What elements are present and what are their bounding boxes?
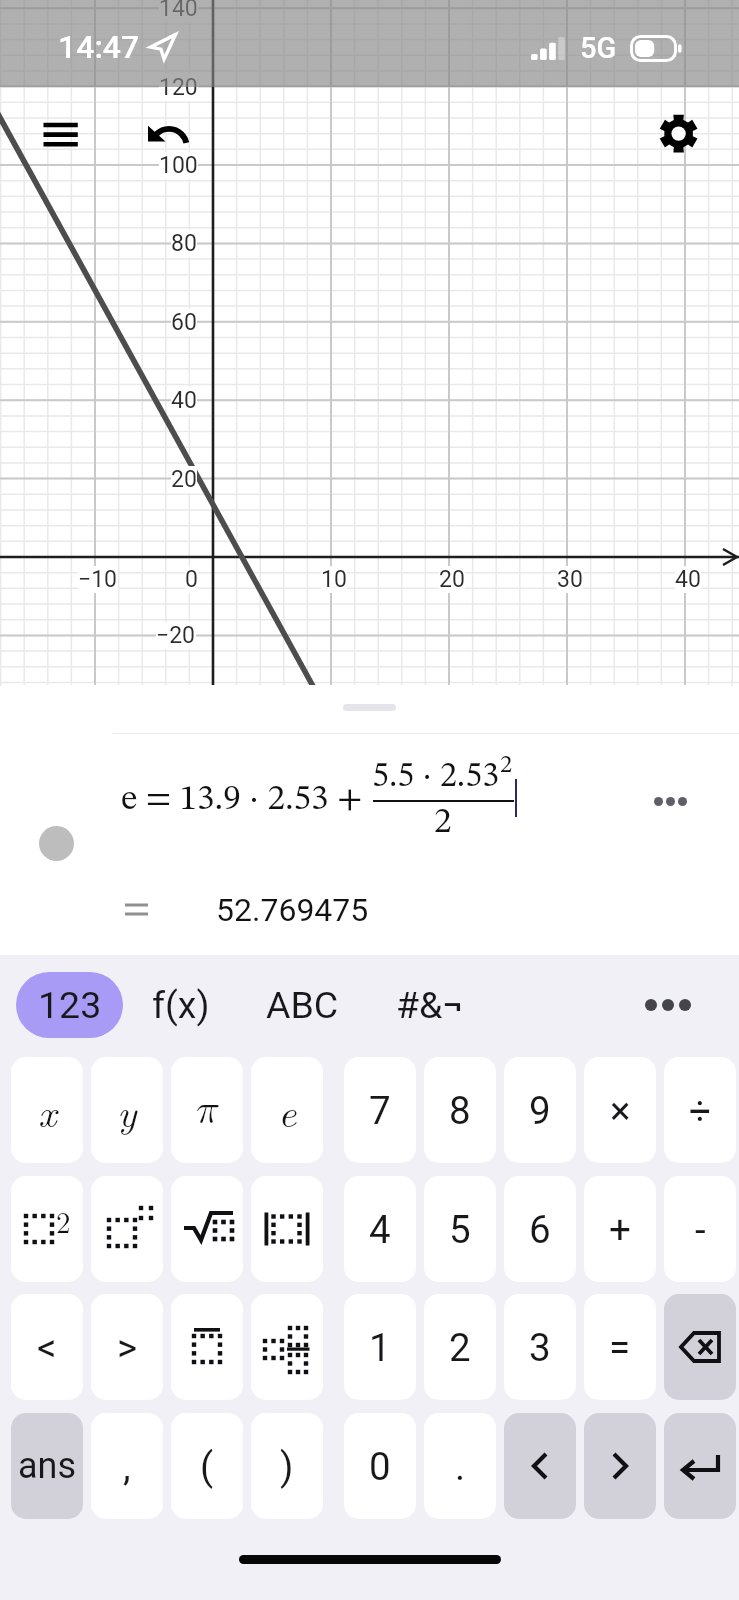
button[interactable]: y (91, 1057, 163, 1163)
button[interactable]: ( (171, 1413, 243, 1519)
staticText: 52.769475 (216, 891, 369, 929)
button[interactable]: - (664, 1176, 736, 1282)
staticText: #&¬ (396, 983, 464, 1027)
staticText: 120 (159, 74, 198, 101)
staticText: 2 (500, 753, 513, 778)
staticText: 8 (449, 1088, 471, 1133)
staticText: 0 (369, 1444, 391, 1489)
staticText: - (695, 1207, 706, 1252)
button[interactable]: e (251, 1057, 323, 1163)
button[interactable]: > (91, 1294, 163, 1400)
staticText: e (278, 1082, 297, 1139)
staticText: x (38, 1082, 57, 1139)
staticText: 9 (529, 1088, 551, 1133)
button[interactable]: < (11, 1294, 83, 1400)
button[interactable]: Enter (664, 1413, 736, 1519)
staticText: 2 (434, 805, 452, 840)
button[interactable]: f(x) (146, 972, 216, 1038)
button[interactable]: ABC (259, 972, 345, 1038)
button[interactable]: Delete (664, 1294, 736, 1400)
button[interactable]: 2 (11, 1176, 83, 1282)
button[interactable]: + (584, 1176, 656, 1282)
button[interactable]: ÷ (664, 1057, 736, 1163)
button[interactable]: 8 (424, 1057, 496, 1163)
staticText: ) (280, 1444, 294, 1489)
button[interactable]: , (91, 1413, 163, 1519)
staticText: 100 (159, 152, 198, 179)
staticText: 5 (449, 1207, 471, 1252)
staticText: 7 (369, 1088, 391, 1133)
staticText: 80 (171, 230, 197, 257)
button[interactable]: More options (640, 771, 700, 831)
staticText: , (123, 1444, 131, 1489)
button[interactable] (171, 1176, 243, 1282)
staticText: 2 (449, 1325, 471, 1370)
staticText: < (37, 1325, 57, 1370)
staticText: e = 13.9 · 2.53 + (121, 782, 363, 817)
button[interactable]: 4 (344, 1176, 416, 1282)
staticText: 6 (529, 1207, 551, 1252)
button[interactable] (91, 1176, 163, 1282)
staticText: 3 (529, 1325, 551, 1370)
staticText: 40 (171, 387, 197, 414)
staticText: 5.5 · 2.53 (372, 760, 500, 794)
button[interactable] (171, 1294, 243, 1400)
button[interactable]: More (633, 972, 703, 1038)
button[interactable]: ) (251, 1413, 323, 1519)
staticText: + (609, 1207, 631, 1252)
staticText: ( (200, 1444, 214, 1489)
staticText: 40 (675, 566, 701, 593)
button[interactable] (251, 1294, 323, 1400)
staticText: 5G (580, 31, 617, 65)
button[interactable]: 2 (424, 1294, 496, 1400)
staticText: ABC (266, 983, 339, 1027)
staticText: y (117, 1082, 137, 1139)
button[interactable]: 1 (344, 1294, 416, 1400)
button[interactable]: #&¬ (387, 972, 473, 1038)
staticText: 30 (557, 566, 583, 593)
button[interactable]: Settings (644, 99, 714, 169)
button[interactable]: Left (504, 1413, 576, 1519)
button[interactable]: 3 (504, 1294, 576, 1400)
staticText: 0 (185, 566, 198, 593)
staticText: 20 (171, 466, 197, 493)
button[interactable]: 0 (344, 1413, 416, 1519)
staticText: −20 (156, 622, 196, 649)
button[interactable] (251, 1176, 323, 1282)
button[interactable]: 6 (504, 1176, 576, 1282)
button[interactable]: Right (584, 1413, 656, 1519)
button[interactable]: Menu (26, 100, 96, 170)
button[interactable]: 𝜋 (171, 1057, 243, 1163)
button[interactable]: 9 (504, 1057, 576, 1163)
staticText: ans (18, 1445, 77, 1487)
staticText: . (455, 1444, 466, 1489)
button[interactable]: 5 (424, 1176, 496, 1282)
staticText: 𝜋 (196, 1090, 219, 1130)
staticText: −10 (78, 566, 118, 593)
staticText: 14:47 (58, 28, 140, 66)
staticText: 2 (56, 1200, 71, 1241)
button[interactable]: × (584, 1057, 656, 1163)
staticText: 123 (38, 983, 102, 1027)
button[interactable]: ans (11, 1413, 83, 1519)
staticText: 1 (369, 1325, 391, 1370)
staticText: f(x) (152, 983, 210, 1027)
button[interactable]: = (584, 1294, 656, 1400)
staticText: 10 (321, 566, 347, 593)
button[interactable]: Undo (135, 100, 205, 170)
staticText: 4 (369, 1207, 391, 1252)
staticText: 140 (159, 0, 198, 22)
staticText: ÷ (689, 1088, 711, 1133)
button[interactable]: 123 (16, 972, 123, 1038)
button[interactable]: x (11, 1057, 83, 1163)
staticText: 60 (171, 309, 197, 336)
staticText: × (610, 1088, 631, 1133)
staticText: > (117, 1325, 138, 1370)
staticText: 20 (439, 566, 465, 593)
button[interactable]: Toggle visibility (39, 826, 74, 861)
button[interactable]: 7 (344, 1057, 416, 1163)
button[interactable]: . (424, 1413, 496, 1519)
staticText: = (609, 1325, 631, 1370)
